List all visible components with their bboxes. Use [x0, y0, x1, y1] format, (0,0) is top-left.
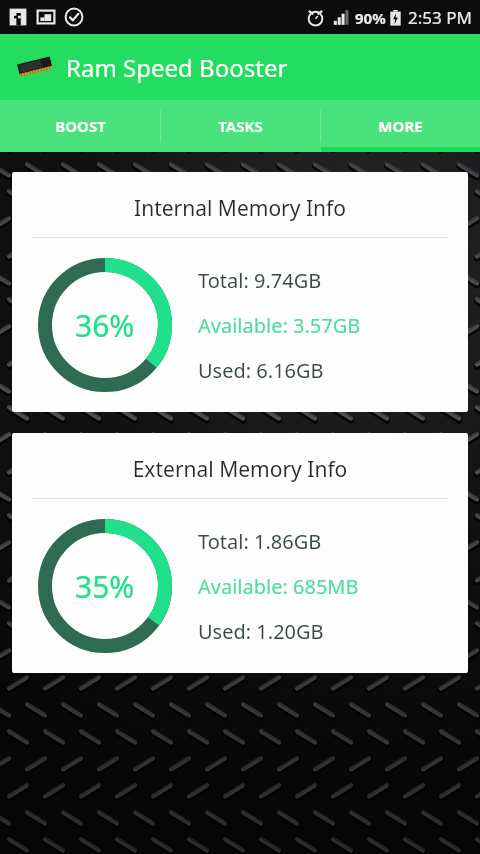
- staticText: Used: 6.16GB: [198, 357, 324, 384]
- staticText: TASKS: [218, 116, 263, 136]
- staticText: Available: 685MB: [198, 573, 359, 600]
- staticText: Used: 1.20GB: [198, 618, 324, 645]
- button[interactable]: TASKS: [161, 100, 320, 152]
- staticText: MORE: [378, 116, 423, 136]
- staticText: 90%: [355, 8, 386, 28]
- staticText: 35%: [75, 566, 135, 607]
- staticText: 36%: [75, 305, 135, 346]
- button[interactable]: MORE: [321, 100, 480, 152]
- staticText: Ram Speed Booster: [66, 51, 288, 84]
- staticText: BOOST: [55, 116, 106, 136]
- staticText: Total: 1.86GB: [198, 528, 322, 555]
- staticText: Internal Memory Info: [12, 194, 468, 223]
- button[interactable]: Internal Memory Info: [12, 172, 468, 412]
- button[interactable]: BOOST: [0, 100, 160, 152]
- staticText: External Memory Info: [12, 455, 468, 484]
- button[interactable]: External Memory Info: [12, 433, 468, 673]
- other: App icon: [14, 46, 56, 88]
- staticText: 2:53 PM: [408, 6, 472, 29]
- staticText: Available: 3.57GB: [198, 312, 361, 339]
- staticText: Total: 9.74GB: [198, 267, 322, 294]
